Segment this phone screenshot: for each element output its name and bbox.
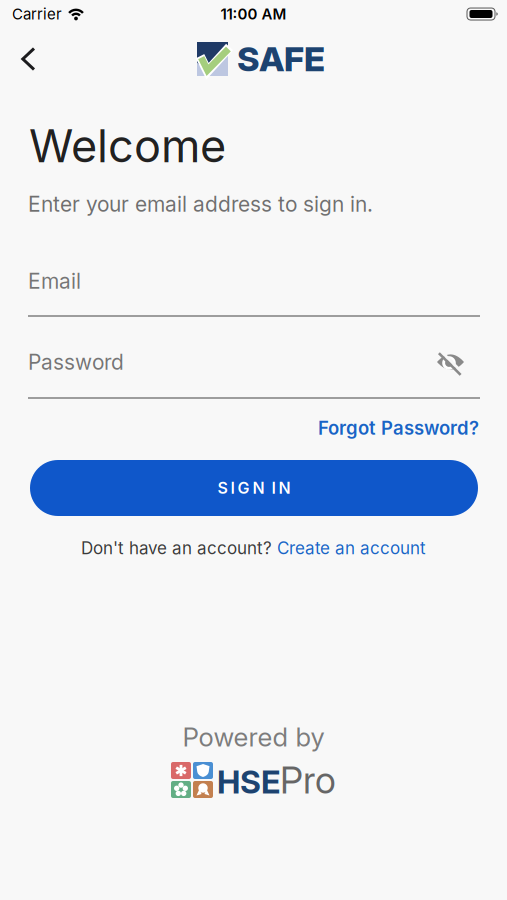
staticText: Don't have an account? [81, 538, 272, 558]
button[interactable]: S I G N I N [0, 460, 507, 516]
staticText: S I G N I N [217, 478, 290, 498]
staticText: SAFE [237, 38, 325, 79]
staticText: Forgot Password? [318, 417, 479, 439]
button[interactable]: Create an account [277, 538, 426, 558]
staticText: Enter your email address to sign in. [28, 191, 373, 217]
staticText: Pro [280, 758, 336, 802]
staticText: 11:00 AM [220, 5, 286, 23]
button[interactable]: Password [0, 349, 507, 399]
staticText: Email [28, 268, 81, 294]
button[interactable]: Back [0, 28, 51, 90]
staticText: Welcome [29, 119, 226, 173]
staticText: Carrier [12, 5, 62, 23]
staticText: Password [28, 349, 124, 375]
button[interactable]: Email [0, 268, 507, 317]
staticText: Create an account [277, 538, 426, 558]
button[interactable]: Forgot Password? [318, 417, 479, 439]
staticText: Powered by [182, 721, 324, 753]
staticText: HSE [217, 762, 280, 801]
